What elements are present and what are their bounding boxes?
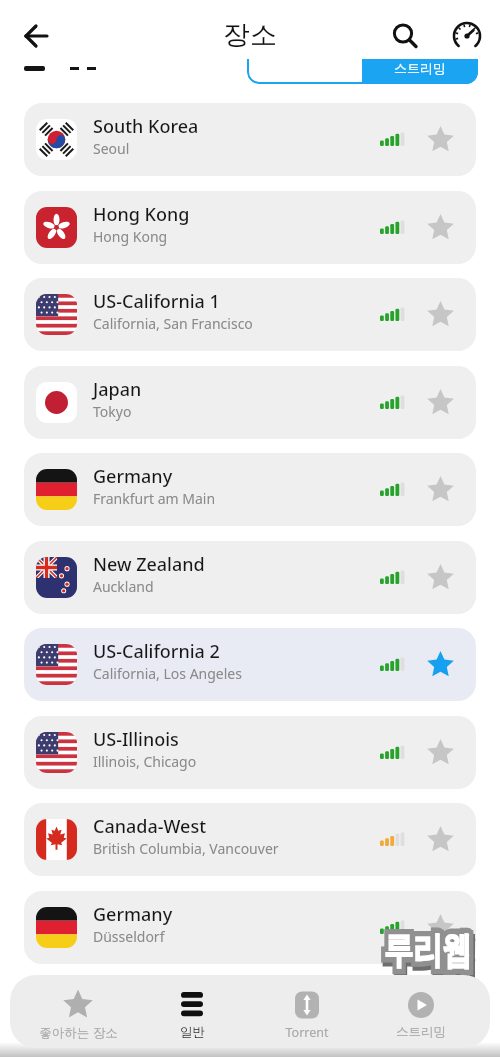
- staticText: 일반: [180, 1024, 205, 1040]
- button[interactable]: Torrent: [250, 982, 364, 1044]
- staticText: British Columbia, Vancouver: [93, 839, 279, 858]
- button[interactable]: [424, 124, 457, 157]
- staticText: California, San Francisco: [93, 314, 253, 333]
- button[interactable]: [247, 47, 478, 84]
- button[interactable]: [424, 387, 457, 420]
- button[interactable]: [424, 299, 457, 332]
- button[interactable]: South Korea: [24, 103, 476, 176]
- staticText: US-California 2: [93, 639, 220, 664]
- button[interactable]: Canada-West: [24, 803, 476, 876]
- button[interactable]: [424, 649, 457, 682]
- button[interactable]: [450, 19, 484, 53]
- staticText: Germany: [93, 464, 173, 489]
- button[interactable]: [424, 912, 457, 945]
- staticText: California, Los Angeles: [93, 664, 242, 683]
- button[interactable]: 스트리밍: [364, 982, 478, 1044]
- button[interactable]: Germany: [24, 453, 476, 526]
- staticText: Frankfurt am Main: [93, 489, 216, 508]
- staticText: 좋아하는 장소: [39, 1024, 118, 1041]
- button[interactable]: [424, 824, 457, 857]
- staticText: Düsseldorf: [93, 927, 165, 946]
- button[interactable]: 스트리밍: [362, 47, 478, 84]
- button[interactable]: Japan: [24, 366, 476, 439]
- button[interactable]: US-California 1: [24, 278, 476, 351]
- button[interactable]: [388, 18, 422, 52]
- button[interactable]: New Zealand: [24, 541, 476, 614]
- button[interactable]: US-Illinois: [24, 716, 476, 789]
- staticText: Tokyo: [93, 402, 132, 421]
- button[interactable]: [20, 20, 52, 52]
- staticText: Canada-West: [93, 814, 207, 839]
- staticText: 루리웹: [384, 927, 471, 974]
- staticText: Hong Kong: [93, 227, 168, 246]
- staticText: Auckland: [93, 577, 154, 596]
- button[interactable]: US-California 2: [24, 628, 476, 701]
- staticText: South Korea: [93, 114, 199, 139]
- button[interactable]: Hong Kong: [24, 191, 476, 264]
- staticText: Torrent: [285, 1024, 329, 1041]
- staticText: 스트리밍: [396, 1024, 446, 1040]
- staticText: Germany: [93, 902, 173, 927]
- button[interactable]: Germany: [24, 891, 476, 964]
- staticText: US-California 1: [93, 289, 220, 314]
- button[interactable]: [424, 737, 457, 770]
- staticText: 스트리밍: [394, 60, 446, 76]
- staticText: 장소: [223, 18, 277, 52]
- staticText: 루리웹: [384, 927, 471, 974]
- staticText: US-Illinois: [93, 727, 179, 752]
- button[interactable]: 일반: [135, 982, 249, 1044]
- staticText: Illinois, Chicago: [93, 752, 197, 771]
- button[interactable]: [424, 212, 457, 245]
- staticText: 루리웹: [385, 931, 473, 978]
- staticText: Hong Kong: [93, 202, 190, 227]
- staticText: Seoul: [93, 139, 130, 158]
- button[interactable]: [424, 562, 457, 595]
- button[interactable]: 좋아하는 장소: [21, 982, 135, 1044]
- staticText: New Zealand: [93, 552, 205, 577]
- button[interactable]: [424, 474, 457, 507]
- staticText: Japan: [93, 377, 142, 402]
